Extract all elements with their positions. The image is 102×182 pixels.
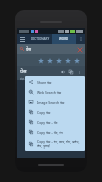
button[interactable]: Speak bbox=[60, 69, 66, 75]
button[interactable]: Rate star bbox=[63, 56, 72, 65]
staticText: Copy पेस – रंग, छाप, रोग, प्रलेप, लेप, प… bbox=[37, 139, 83, 148]
button[interactable]: Rate star bbox=[72, 56, 81, 65]
button[interactable]: WORD bbox=[52, 34, 76, 44]
staticText: Share पेस bbox=[37, 80, 52, 85]
button[interactable]: Share पेस bbox=[25, 77, 85, 87]
button[interactable]: DICTIONARY bbox=[28, 34, 52, 44]
button[interactable]: Copy bbox=[68, 69, 74, 75]
button[interactable]: पेस bbox=[20, 44, 82, 54]
button[interactable]: Copy पेस bbox=[25, 107, 85, 117]
staticText: WORD bbox=[59, 37, 69, 41]
button[interactable]: More options bbox=[76, 34, 85, 44]
button[interactable]: Rate star bbox=[45, 56, 54, 65]
staticText: पेस bbox=[26, 47, 31, 52]
button[interactable]: More bbox=[76, 69, 82, 75]
staticText: Copy पेस bbox=[37, 110, 51, 115]
button[interactable]: Clear bbox=[77, 47, 82, 52]
button[interactable]: Image Search पेस bbox=[25, 97, 85, 107]
button[interactable]: Web Search पेस bbox=[25, 87, 85, 97]
button[interactable]: Copy पेस – पेंट bbox=[25, 117, 85, 127]
staticText: Web Search पेस bbox=[37, 90, 62, 95]
button[interactable]: Rate star bbox=[54, 56, 63, 65]
button[interactable]: Copy पेस – पेंट, रंग bbox=[25, 127, 85, 137]
button[interactable]: Copy पेस – रंग, छाप, रोग, प्रलेप, लेप, प… bbox=[25, 137, 85, 150]
staticText: पेस bbox=[20, 68, 27, 75]
button[interactable]: Rate star bbox=[36, 56, 45, 65]
button[interactable]: Menu bbox=[17, 34, 28, 44]
staticText: Copy पेस – पेंट, रंग bbox=[37, 130, 63, 135]
staticText: संज्ञा / पुल्लिंग bbox=[20, 77, 33, 80]
staticText: DICTIONARY bbox=[31, 37, 50, 41]
staticText: Copy पेस – पेंट bbox=[37, 120, 58, 125]
staticText: Image Search पेस bbox=[37, 100, 65, 105]
